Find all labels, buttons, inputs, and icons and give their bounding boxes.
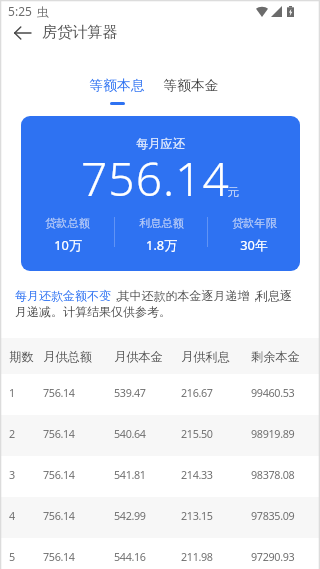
staticText: 4 (9, 508, 15, 523)
staticText: 利息总额 (139, 216, 184, 230)
staticText: 贷款总额 (45, 216, 90, 230)
button[interactable]: 等额本息 (89, 77, 145, 105)
staticText: 剩余本金 (251, 349, 300, 364)
staticText: 月供本金 (114, 349, 163, 364)
staticText: 等额本金 (163, 77, 219, 94)
staticText: 每月应还 (136, 136, 185, 151)
staticText: 98919.89 (251, 426, 295, 441)
staticText: 756.14 (81, 147, 230, 210)
staticText: 3 (9, 467, 15, 482)
staticText: 539.47 (114, 385, 146, 400)
staticText: 214.33 (181, 467, 213, 482)
staticText: 月供总额 (43, 349, 92, 364)
staticText: 期数 (9, 349, 34, 364)
staticText: 544.16 (114, 549, 146, 564)
staticText: 540.64 (114, 426, 146, 441)
staticText: 等额本息 (89, 77, 145, 94)
staticText: 211.98 (181, 549, 213, 564)
staticText: 98378.08 (251, 467, 295, 482)
staticText: 216.67 (181, 385, 213, 400)
staticText: 756.14 (43, 467, 75, 482)
staticText: 97290.93 (251, 549, 295, 564)
staticText: 756.14 (43, 385, 75, 400)
staticText: 5:25 (8, 3, 32, 19)
staticText: 213.15 (181, 508, 213, 523)
staticText: 99460.53 (251, 385, 295, 400)
staticText: 756.14 (43, 508, 75, 523)
staticText: 542.99 (114, 508, 146, 523)
staticText: 756.14 (43, 426, 75, 441)
button[interactable]: 5 (0, 538, 320, 569)
button[interactable]: 2 (0, 415, 320, 456)
button[interactable]: Back (5, 22, 39, 43)
staticText: 30年 (240, 236, 268, 252)
staticText: 月供利息 (181, 349, 230, 364)
staticText: 2 (9, 426, 15, 441)
button[interactable]: 3 (0, 456, 320, 497)
staticText: 元 (227, 185, 239, 199)
staticText: 5 (9, 549, 15, 564)
staticText: 虫 (37, 4, 49, 19)
staticText: 756.14 (43, 549, 75, 564)
staticText: 97835.09 (251, 508, 295, 523)
staticText: 10万 (54, 236, 82, 252)
staticText: 房贷计算器 (42, 22, 118, 41)
staticText: 1.8万 (146, 236, 177, 252)
staticText: 每月还款金额不变，其中还款的本金逐月递增，利息逐 月递减。计算结果仅供参考。 (15, 288, 292, 320)
button[interactable]: 4 (0, 497, 320, 538)
staticText: 贷款年限 (232, 216, 277, 230)
staticText: 541.81 (114, 467, 146, 482)
button[interactable]: 1 (0, 374, 320, 415)
button[interactable]: 等额本金 (163, 77, 219, 105)
staticText: 1 (9, 385, 15, 400)
staticText: 215.50 (181, 426, 213, 441)
